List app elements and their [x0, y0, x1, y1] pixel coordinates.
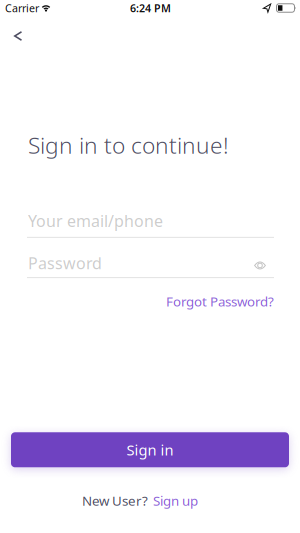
button[interactable]: Forgot Password? — [166, 293, 274, 310]
button[interactable]: Back — [0, 24, 32, 48]
staticText: New User? — [82, 492, 148, 509]
staticText: Your email/phone — [28, 210, 163, 231]
staticText: Password — [28, 252, 102, 273]
staticText: Forgot Password? — [166, 293, 274, 310]
staticText: 6:24 PM — [130, 1, 171, 15]
button[interactable]: Password — [0, 252, 300, 278]
staticText: Carrier — [5, 1, 39, 15]
staticText: Sign in — [126, 440, 173, 460]
button[interactable]: Sign in — [11, 432, 289, 467]
button[interactable]: Sign up — [153, 492, 198, 509]
staticText: Sign in to continue! — [28, 130, 229, 160]
staticText: Sign up — [153, 492, 198, 509]
button[interactable]: Your email/phone — [0, 210, 300, 238]
